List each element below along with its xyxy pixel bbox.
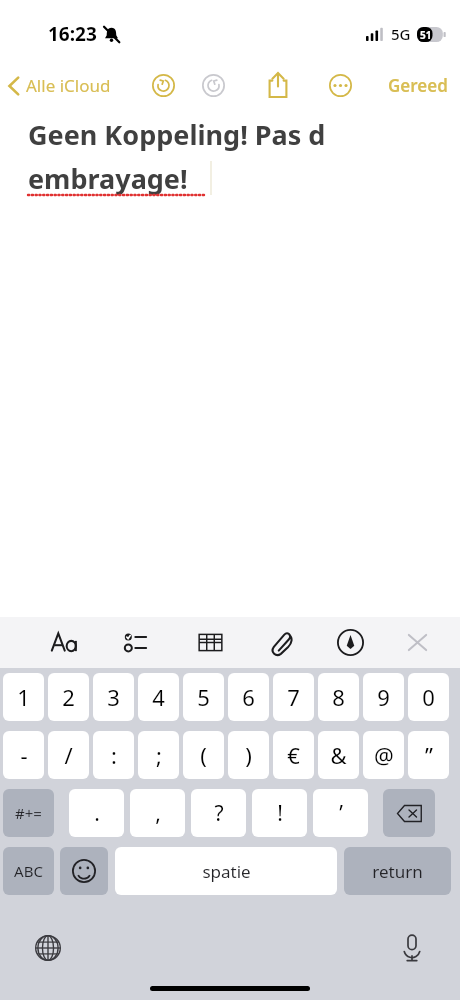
staticText: : — [111, 740, 117, 770]
staticText: ’ — [339, 799, 343, 828]
staticText: Geen Koppeling! Pas d — [28, 116, 326, 153]
button[interactable]: return — [344, 847, 451, 895]
staticText: 2 — [62, 682, 75, 712]
staticText: € — [287, 740, 300, 770]
staticText: return — [372, 860, 423, 883]
staticText: 9 — [377, 682, 390, 712]
staticText: 1 — [17, 682, 30, 712]
button[interactable]: #+= — [3, 789, 54, 837]
staticText: embrayage! — [28, 160, 188, 197]
button[interactable]: Backspace — [383, 789, 435, 837]
button[interactable]: Close keyboard — [395, 620, 439, 664]
staticText: spatie — [202, 860, 251, 883]
staticText: ( — [200, 740, 207, 770]
button[interactable]: ( — [183, 731, 224, 779]
button[interactable]: 9 — [363, 673, 404, 721]
button[interactable]: Emoji — [60, 847, 108, 895]
staticText: 0 — [422, 682, 435, 712]
button[interactable]: ) — [228, 731, 269, 779]
staticText: 5 — [197, 682, 210, 712]
button[interactable]: . — [69, 789, 124, 837]
staticText: 4 — [152, 682, 165, 712]
button[interactable]: @ — [363, 731, 404, 779]
button[interactable]: 4 — [138, 673, 179, 721]
staticText: , — [155, 799, 161, 828]
button[interactable]: ! — [252, 789, 307, 837]
staticText: ? — [214, 799, 224, 828]
button[interactable]: Redo — [194, 66, 232, 104]
button[interactable]: Attach — [260, 620, 304, 664]
button[interactable]: 8 — [318, 673, 359, 721]
button[interactable]: 1 — [3, 673, 44, 721]
staticText: Gereed — [388, 74, 448, 97]
button[interactable]: More — [320, 65, 360, 105]
staticText: 6 — [242, 682, 255, 712]
staticText: 3 — [107, 682, 120, 712]
button[interactable]: Dictate — [390, 926, 434, 970]
button[interactable]: Undo — [144, 66, 182, 104]
button[interactable]: Share — [258, 65, 298, 105]
button[interactable]: 7 — [273, 673, 314, 721]
button[interactable]: Change keyboard — [26, 926, 70, 970]
button[interactable]: Table — [188, 620, 232, 664]
button[interactable]: 0 — [408, 673, 449, 721]
staticText: #+= — [15, 803, 42, 823]
staticText: 7 — [287, 682, 300, 712]
staticText: ) — [245, 740, 252, 770]
button[interactable]: Gereed — [376, 68, 460, 103]
button[interactable]: , — [130, 789, 185, 837]
button[interactable]: & — [318, 731, 359, 779]
staticText: / — [64, 740, 73, 770]
button[interactable]: ” — [408, 731, 449, 779]
staticText: - — [20, 740, 28, 770]
button[interactable]: / — [48, 731, 89, 779]
staticText: . — [94, 799, 100, 828]
button[interactable]: 5 — [183, 673, 224, 721]
staticText: Alle iCloud — [26, 74, 111, 97]
button[interactable]: 6 — [228, 673, 269, 721]
button[interactable]: ’ — [313, 789, 368, 837]
button[interactable]: € — [273, 731, 314, 779]
button[interactable]: : — [93, 731, 134, 779]
staticText: 8 — [332, 682, 345, 712]
button[interactable]: 2 — [48, 673, 89, 721]
button[interactable]: ; — [138, 731, 179, 779]
button[interactable]: ? — [191, 789, 246, 837]
button[interactable]: Checklist — [115, 620, 159, 664]
button[interactable]: spatie — [115, 847, 337, 895]
staticText: 16:23 — [48, 21, 97, 47]
button[interactable]: Markup — [328, 620, 372, 664]
staticText: ! — [277, 799, 283, 828]
button[interactable]: 3 — [93, 673, 134, 721]
staticText: ” — [425, 740, 433, 770]
staticText: 5G — [391, 24, 411, 44]
button[interactable]: Text format — [42, 620, 86, 664]
button[interactable]: Alle iCloud — [0, 70, 115, 101]
staticText: @ — [374, 740, 394, 770]
button[interactable]: - — [3, 731, 44, 779]
button[interactable]: ABC — [3, 847, 54, 895]
staticText: & — [330, 740, 347, 770]
staticText: ; — [156, 740, 162, 770]
staticText: ABC — [14, 861, 43, 881]
staticText: 51 — [420, 28, 432, 42]
